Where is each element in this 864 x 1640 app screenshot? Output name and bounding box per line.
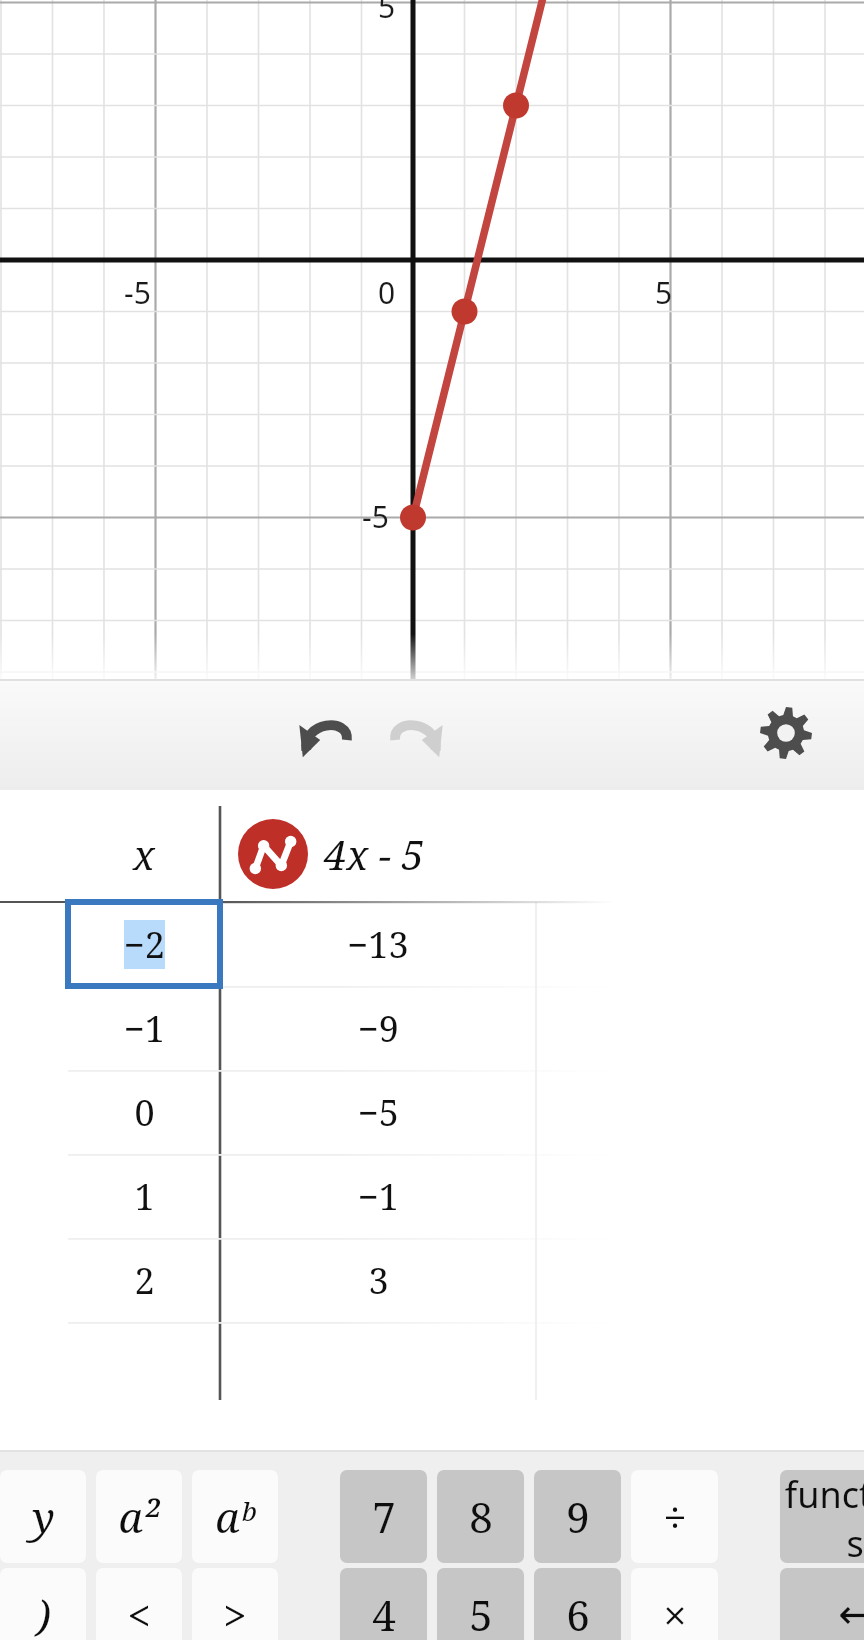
staticText: 5 (469, 1586, 493, 1640)
staticText: 9 (566, 1488, 590, 1545)
button[interactable]: × (631, 1568, 718, 1640)
staticText: −13 (347, 920, 409, 969)
staticText: 0 (378, 272, 396, 313)
button[interactable]: aᵇ (192, 1470, 278, 1563)
staticText: 5 (378, 0, 396, 27)
button[interactable]: a² (96, 1470, 182, 1563)
staticText: 8 (469, 1488, 493, 1545)
staticText: 6 (566, 1586, 590, 1640)
button[interactable]: < (96, 1568, 182, 1640)
button[interactable]: 6 (534, 1568, 621, 1640)
button[interactable]: 0 (68, 1070, 220, 1154)
button[interactable]: 1 (68, 1154, 220, 1238)
staticText: aᵇ (215, 1488, 255, 1545)
button[interactable]: 7 (340, 1470, 427, 1563)
button[interactable]: 5 (437, 1568, 524, 1640)
button[interactable]: 8 (437, 1470, 524, 1563)
button[interactable]: ) (0, 1568, 86, 1640)
button[interactable]: 2 (68, 1238, 220, 1322)
button[interactable]: Undo (288, 695, 364, 771)
button[interactable]: functions (780, 1470, 864, 1563)
button[interactable]: Function style (238, 819, 308, 889)
staticText: > (223, 1586, 247, 1640)
button[interactable]: Function style (220, 806, 536, 902)
staticText: × (663, 1586, 687, 1640)
button[interactable]: ÷ (631, 1470, 718, 1563)
button[interactable]: > (192, 1568, 278, 1640)
staticText: 7 (372, 1488, 396, 1545)
staticText: -5 (362, 496, 389, 537)
button[interactable]: 9 (534, 1470, 621, 1563)
staticText: −1 (124, 1004, 165, 1053)
button[interactable]: −5 (220, 1070, 536, 1154)
staticText: x (133, 827, 155, 881)
staticText: 2 (134, 1256, 155, 1305)
staticText: ) (36, 1586, 51, 1640)
staticText: ÷ (663, 1488, 687, 1545)
staticText: -5 (124, 272, 151, 313)
staticText: 1 (134, 1172, 155, 1221)
staticText: −9 (358, 1004, 399, 1053)
button[interactable]: y (0, 1470, 86, 1563)
staticText: −1 (358, 1172, 399, 1221)
staticText: −2 (124, 920, 165, 969)
button[interactable]: Redo (378, 695, 454, 771)
staticText: 3 (368, 1256, 389, 1305)
staticText: 4x − 5 (324, 827, 424, 881)
button[interactable]: ← (780, 1568, 864, 1640)
button[interactable]: 3 (220, 1238, 536, 1322)
button[interactable]: −13 (220, 902, 536, 986)
button[interactable]: Settings (748, 695, 824, 771)
button[interactable]: −1 (68, 986, 220, 1070)
staticText: 0 (134, 1088, 155, 1137)
staticText: 4 (372, 1586, 396, 1640)
staticText: 5 (655, 272, 673, 313)
button[interactable]: −2 (68, 902, 220, 986)
button[interactable]: −9 (220, 986, 536, 1070)
staticText: a² (118, 1488, 160, 1545)
button[interactable]: x (68, 806, 220, 902)
button[interactable]: 4 (340, 1568, 427, 1640)
button[interactable]: −1 (220, 1154, 536, 1238)
staticText: functions (780, 1470, 864, 1563)
staticText: −5 (358, 1088, 399, 1137)
staticText: ← (838, 1591, 864, 1638)
staticText: y (32, 1488, 55, 1545)
staticText: < (127, 1586, 151, 1640)
